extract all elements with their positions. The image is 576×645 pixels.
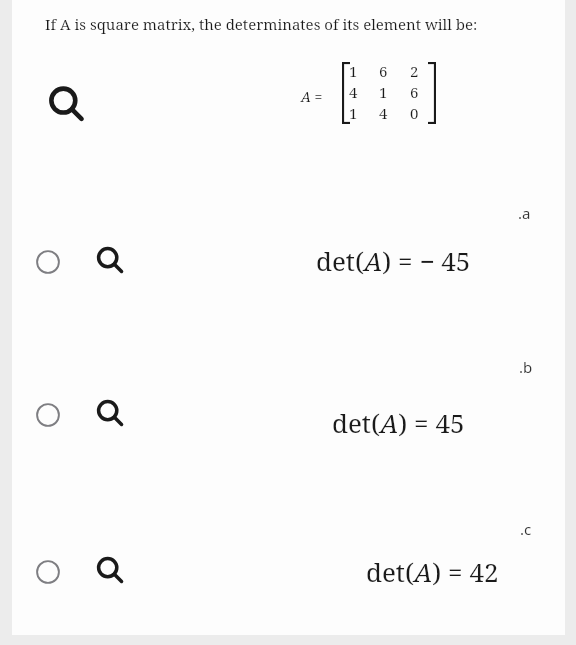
button[interactable]: Select option .c: [36, 560, 60, 584]
staticText: 6: [379, 61, 388, 81]
staticText: 6: [410, 82, 419, 102]
staticText: 4: [379, 103, 388, 123]
staticText: 1: [349, 103, 358, 123]
button[interactable]: [12, 230, 565, 294]
button[interactable]: [12, 540, 565, 604]
staticText: det(A) = 42: [366, 554, 499, 589]
staticText: 1: [349, 61, 358, 81]
button[interactable]: [12, 383, 565, 447]
staticText: A =: [301, 87, 323, 106]
staticText: det(A) = − 45: [316, 243, 471, 278]
button[interactable]: Select option .b: [36, 403, 60, 427]
staticText: 4: [349, 82, 358, 102]
button[interactable]: Zoom option .b image: [93, 398, 128, 433]
staticText: 2: [410, 61, 419, 81]
staticText: .a: [518, 203, 531, 223]
button[interactable]: Zoom question image: [44, 84, 90, 130]
staticText: If A is square matrix, the determinates …: [45, 14, 478, 34]
staticText: .b: [519, 357, 533, 377]
staticText: 0: [410, 103, 419, 123]
button[interactable]: Zoom option .a image: [93, 245, 128, 280]
button[interactable]: Zoom option .c image: [93, 555, 128, 590]
staticText: .c: [520, 519, 532, 539]
staticText: 1: [379, 82, 388, 102]
staticText: det(A) = 45: [332, 405, 465, 440]
button[interactable]: Select option .a: [36, 250, 60, 274]
